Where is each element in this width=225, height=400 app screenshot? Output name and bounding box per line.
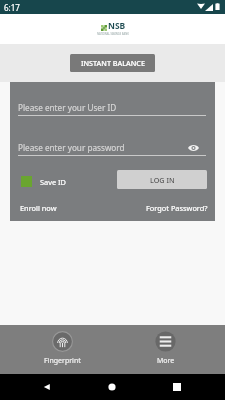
staticText: Fingerprint (44, 356, 81, 366)
button[interactable]: Back (37, 377, 57, 397)
button[interactable]: LOG IN (117, 170, 207, 189)
button[interactable]: Forgot Password? (146, 203, 208, 213)
button[interactable]: Home (102, 377, 122, 397)
staticText: INSTANT BALANCE (81, 58, 145, 68)
staticText: 6:17 (4, 2, 20, 13)
button[interactable]: INSTANT BALANCE (70, 54, 155, 72)
staticText: NSB (108, 20, 126, 32)
staticText: Save ID (40, 177, 66, 187)
button[interactable]: Show password (185, 140, 201, 156)
button[interactable]: Fingerprint (34, 325, 91, 366)
staticText: NATIONAL SAVINGS BANK (97, 32, 129, 36)
staticText: Please enter your password (18, 142, 125, 153)
staticText: More (157, 356, 175, 366)
staticText: LOG IN (150, 175, 175, 185)
button[interactable]: More (145, 325, 186, 366)
button[interactable]: Save ID (21, 176, 66, 187)
button[interactable]: Recents (167, 377, 187, 397)
staticText: Please enter your User ID (18, 102, 117, 113)
button[interactable]: Enroll now (20, 203, 57, 213)
